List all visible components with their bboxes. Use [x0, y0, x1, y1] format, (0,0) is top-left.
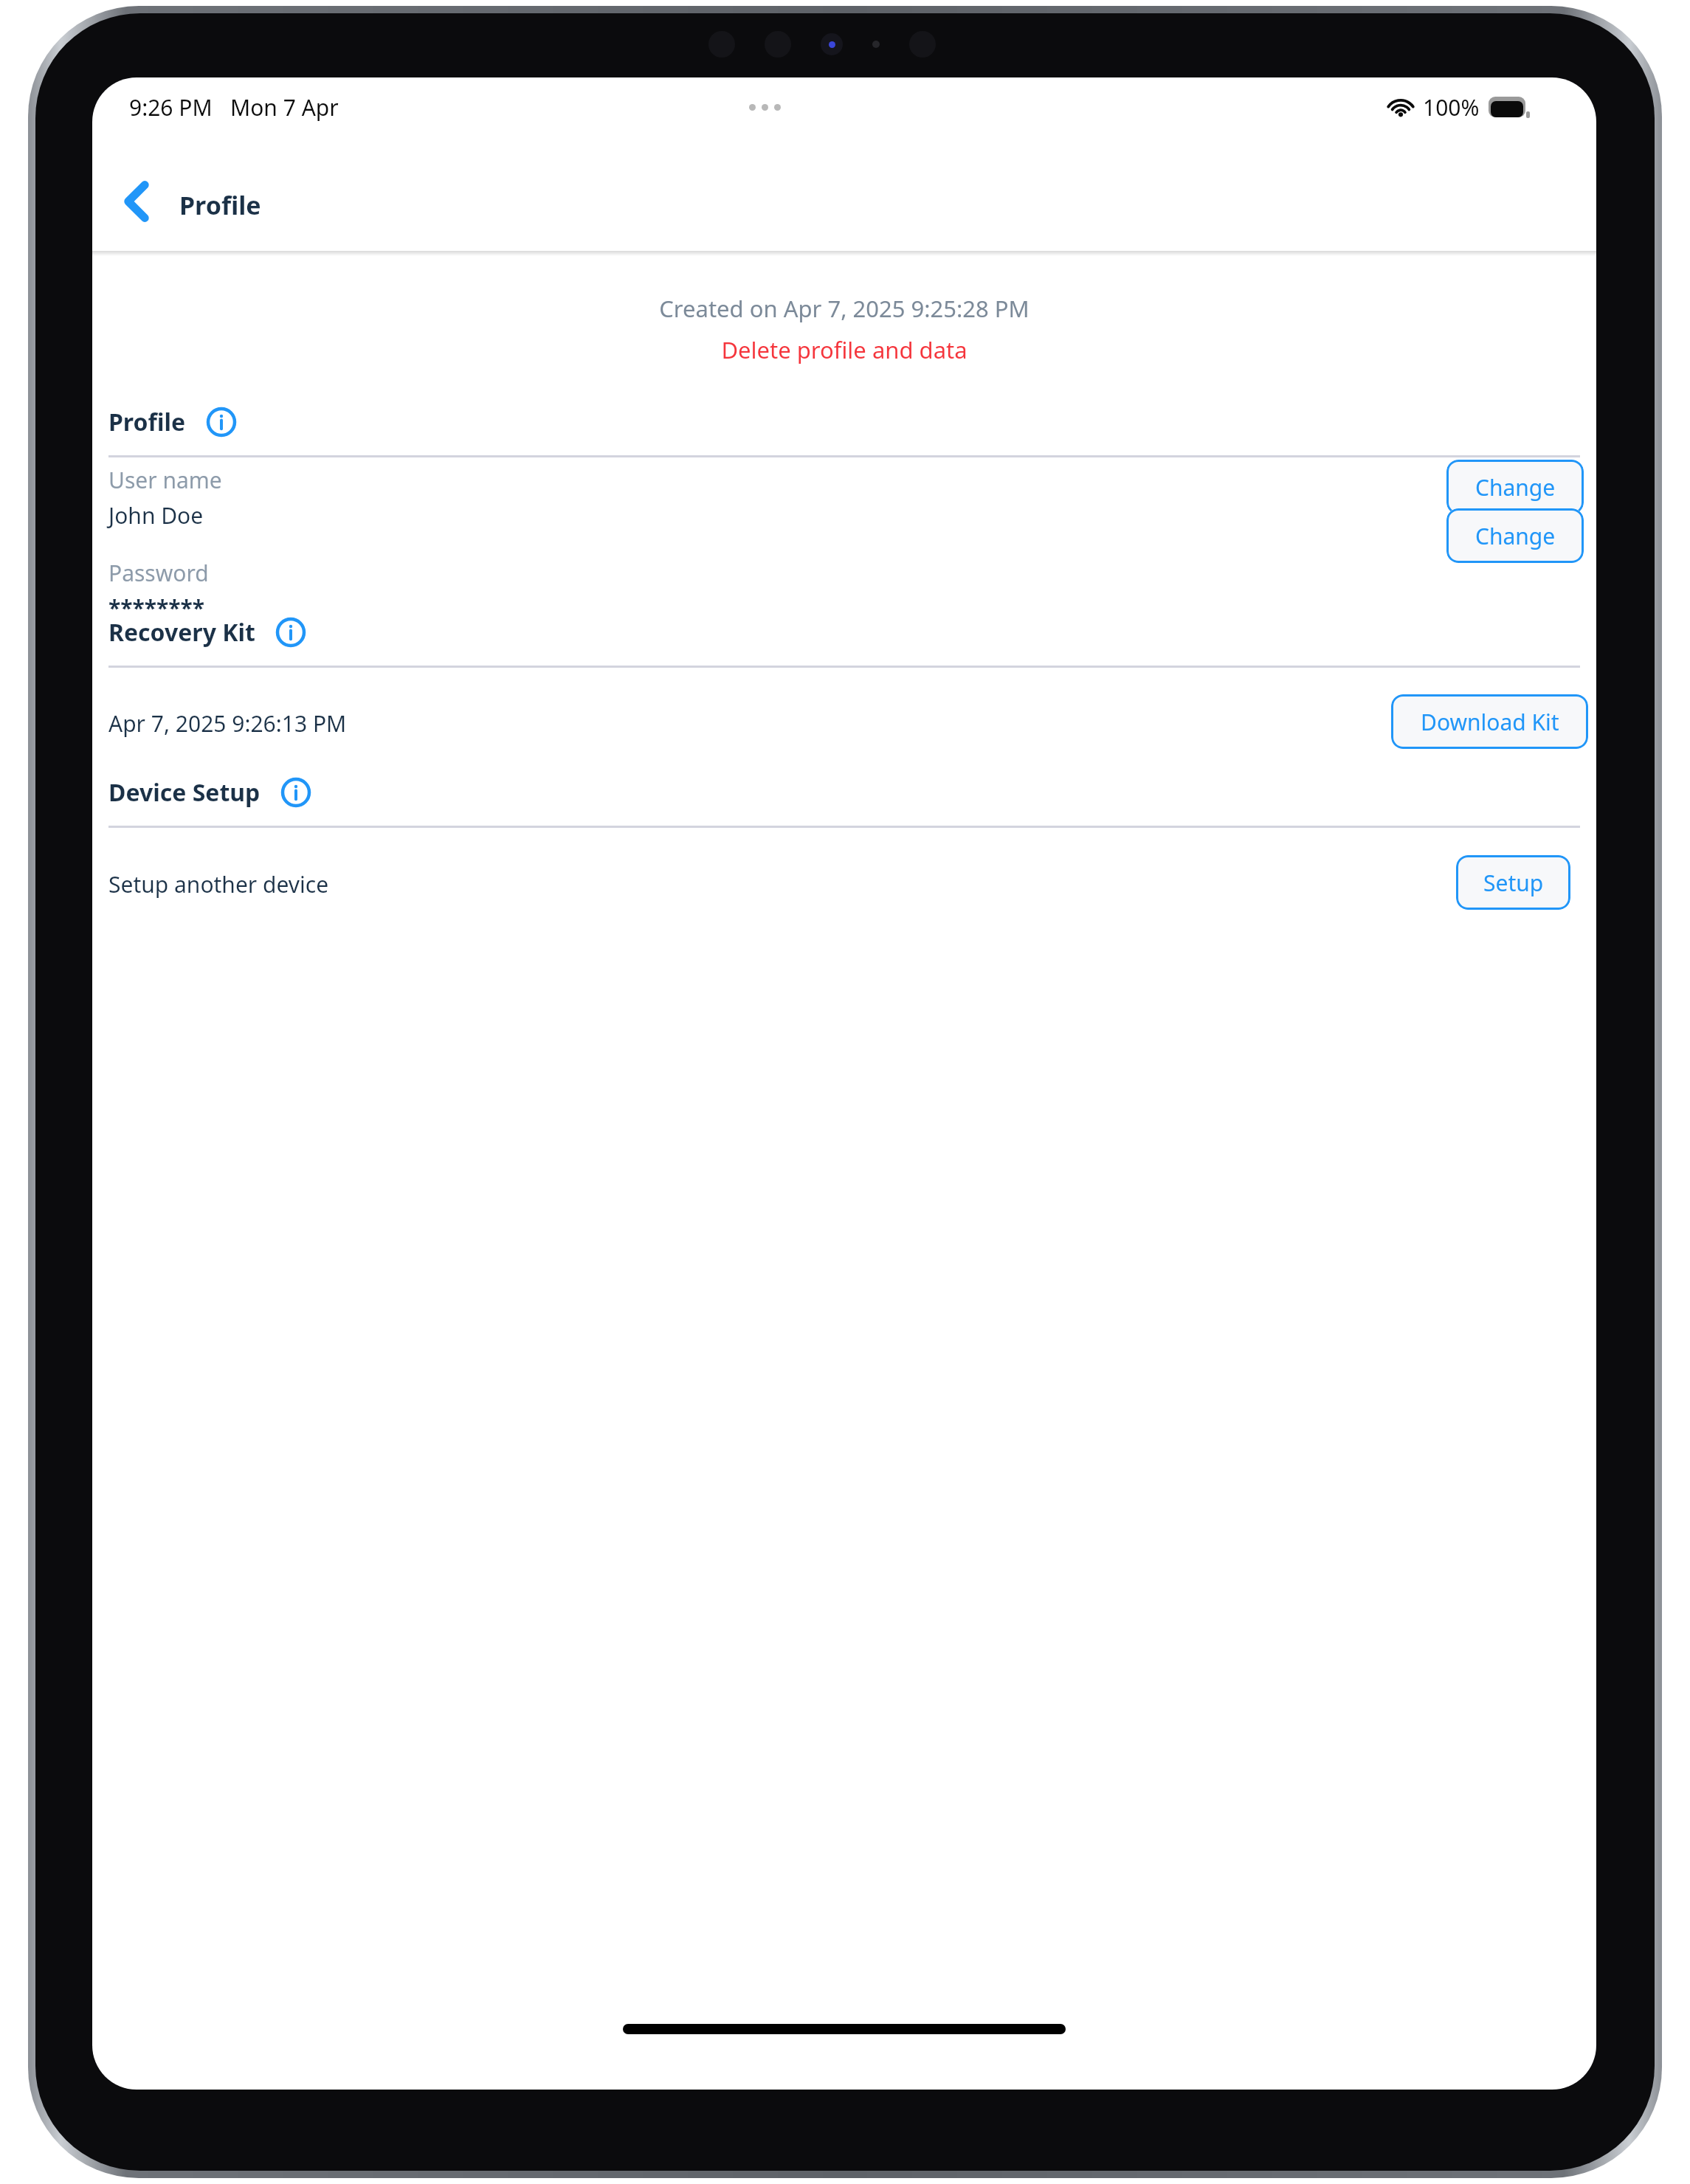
staticText: 9:26 PM — [129, 92, 213, 122]
staticText: ******** — [108, 592, 205, 623]
staticText: Created on Apr 7, 2025 9:25:28 PM — [92, 293, 1596, 324]
staticText: Password — [108, 558, 209, 588]
staticText: Apr 7, 2025 9:26:13 PM — [108, 708, 347, 739]
button[interactable]: Change — [1446, 508, 1584, 563]
staticText: Setup — [1483, 868, 1544, 898]
staticText: Device Setup — [108, 776, 261, 809]
button[interactable]: Device Setup info — [280, 776, 312, 809]
staticText: John Doe — [108, 500, 204, 531]
button[interactable]: Recovery Kit info — [275, 616, 307, 649]
staticText: 100% — [1423, 92, 1480, 122]
staticText: Setup another device — [108, 869, 329, 899]
button[interactable]: Profile info — [205, 406, 238, 438]
staticText: Profile — [108, 406, 186, 438]
button[interactable]: Change — [1446, 460, 1584, 514]
staticText: Mon 7 Apr — [230, 92, 339, 122]
button[interactable]: Delete profile and data — [92, 334, 1596, 365]
staticText: Recovery Kit — [108, 616, 255, 649]
button[interactable]: Setup — [1456, 855, 1570, 910]
button[interactable]: Back — [107, 151, 166, 251]
staticText: Delete profile and data — [92, 334, 1596, 365]
staticText: Change — [1475, 472, 1556, 502]
staticText: Download Kit — [1421, 707, 1559, 737]
staticText: Change — [1475, 521, 1556, 551]
staticText: User name — [108, 465, 222, 495]
button[interactable]: Download Kit — [1391, 694, 1588, 749]
staticText: Profile — [179, 188, 261, 222]
